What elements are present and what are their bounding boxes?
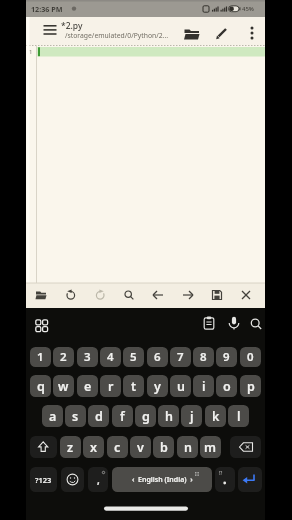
button[interactable] (40, 20, 60, 40)
staticText: g (142, 408, 150, 425)
button[interactable]: r (100, 375, 121, 397)
button[interactable]: o (216, 375, 237, 397)
button[interactable]: m (200, 436, 221, 458)
button[interactable] (33, 317, 51, 335)
button[interactable]: z (60, 436, 81, 458)
button[interactable] (242, 23, 262, 43)
staticText: s (72, 408, 79, 425)
staticText: y (154, 378, 161, 395)
button[interactable]: g (135, 405, 156, 427)
staticText: 6 (154, 349, 161, 365)
button[interactable] (31, 285, 51, 305)
button[interactable]: w (53, 375, 74, 397)
button[interactable]: i (193, 375, 214, 397)
staticText: n (184, 439, 192, 456)
staticText: /storage/emulated/0/Python/2… (65, 31, 169, 40)
button[interactable]: s (65, 405, 86, 427)
staticText: b (160, 439, 168, 456)
staticText: ‹ English (India) › (132, 475, 193, 485)
button[interactable]: ?123 (30, 467, 57, 492)
button[interactable]: a (42, 405, 63, 427)
button[interactable]: 7 (170, 347, 191, 367)
button[interactable]: 9 (216, 347, 237, 367)
staticText: 1 (29, 48, 33, 56)
staticText: p (247, 378, 255, 395)
button[interactable]: n (177, 436, 198, 458)
button[interactable] (148, 285, 168, 305)
staticText: , (97, 473, 100, 487)
staticText: j (190, 408, 194, 425)
button[interactable]: v (130, 436, 151, 458)
button[interactable] (200, 314, 218, 332)
button[interactable] (225, 314, 243, 332)
button[interactable]: 3 (77, 347, 98, 367)
button[interactable]: c (107, 436, 128, 458)
button[interactable] (61, 285, 81, 305)
button[interactable]: e (77, 375, 98, 397)
staticText: x (90, 439, 98, 456)
staticText: q (37, 378, 45, 395)
button[interactable]: x (83, 436, 104, 458)
button[interactable] (90, 285, 110, 305)
button[interactable]: b (153, 436, 174, 458)
button[interactable]: q (30, 375, 51, 397)
staticText: 4 (107, 349, 114, 365)
button[interactable] (212, 23, 232, 43)
staticText: 5 (130, 349, 137, 365)
staticText: 2 (60, 349, 67, 365)
staticText: h (165, 408, 173, 425)
staticText: 7 (177, 349, 184, 365)
button[interactable] (61, 467, 84, 492)
staticText: 8 (200, 349, 207, 365)
button[interactable]: t (123, 375, 144, 397)
button[interactable]: 8 (193, 347, 214, 367)
staticText: z (67, 439, 74, 456)
button[interactable]: 0 (240, 347, 261, 367)
staticText: i (202, 378, 206, 395)
button[interactable] (182, 23, 202, 43)
staticText: v (137, 439, 144, 456)
button[interactable] (215, 467, 235, 492)
staticText: r (108, 378, 114, 395)
button[interactable]: h (158, 405, 179, 427)
button[interactable] (230, 436, 261, 458)
button[interactable] (207, 285, 227, 305)
button[interactable] (247, 315, 265, 333)
button[interactable]: 5 (123, 347, 144, 367)
button[interactable] (236, 285, 256, 305)
staticText: t (131, 378, 137, 395)
staticText: m (204, 439, 217, 456)
staticText: 3 (84, 349, 91, 365)
button[interactable]: ‹ English (India) › (112, 467, 212, 492)
button[interactable]: 1 (30, 347, 51, 367)
staticText: 9 (223, 349, 230, 365)
button[interactable] (119, 285, 139, 305)
button[interactable]: 2 (53, 347, 74, 367)
button[interactable]: u (170, 375, 191, 397)
button[interactable]: p (240, 375, 261, 397)
staticText: k (212, 408, 220, 425)
button[interactable]: 4 (100, 347, 121, 367)
button[interactable] (178, 285, 198, 305)
staticText: 0 (247, 349, 254, 365)
staticText: d (95, 408, 103, 425)
button[interactable] (238, 467, 262, 492)
staticText: 45% (242, 5, 254, 13)
button[interactable]: d (88, 405, 109, 427)
staticText: e (84, 378, 92, 395)
button[interactable]: l (228, 405, 249, 427)
button[interactable] (30, 436, 57, 458)
button[interactable]: f (112, 405, 133, 427)
staticText: o (223, 378, 231, 395)
staticText: 1 (37, 349, 44, 365)
button[interactable]: j (181, 405, 202, 427)
staticText: *2.py (61, 20, 83, 32)
staticText: u (177, 378, 185, 395)
button[interactable]: , (88, 467, 108, 492)
button[interactable]: 6 (147, 347, 168, 367)
staticText: !? (219, 470, 223, 476)
staticText: l (237, 408, 241, 425)
staticText: ?123 (35, 475, 52, 485)
button[interactable]: k (205, 405, 226, 427)
button[interactable]: y (147, 375, 168, 397)
